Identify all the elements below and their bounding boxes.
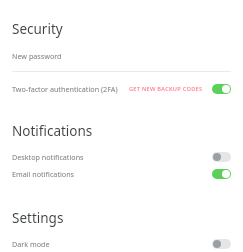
staticText: New password bbox=[12, 51, 62, 61]
button[interactable]: Dark mode bbox=[0, 236, 243, 252]
staticText: Email notifications bbox=[12, 169, 75, 179]
staticText: GET NEW BACKUP CODES bbox=[129, 85, 203, 93]
staticText: Dark mode bbox=[12, 239, 50, 249]
staticText: Desktop notifications bbox=[12, 152, 84, 162]
staticText: Notifications bbox=[12, 122, 93, 140]
staticText: Settings bbox=[12, 209, 64, 227]
button[interactable]: Dark mode bbox=[212, 239, 231, 249]
button[interactable]: Email notifications bbox=[212, 169, 231, 179]
staticText: Two-factor authentication (2FA) bbox=[12, 84, 118, 94]
button[interactable]: Two-factor authentication (2FA) bbox=[0, 81, 243, 97]
button[interactable]: New password bbox=[0, 49, 243, 72]
button[interactable]: Email notifications bbox=[0, 166, 243, 182]
button[interactable]: Two-factor authentication (2FA) bbox=[212, 84, 231, 94]
button[interactable]: GET NEW BACKUP CODES bbox=[127, 83, 205, 95]
button[interactable]: Desktop notifications bbox=[0, 149, 243, 165]
button[interactable]: Desktop notifications bbox=[212, 152, 231, 162]
staticText: Security bbox=[12, 20, 63, 38]
